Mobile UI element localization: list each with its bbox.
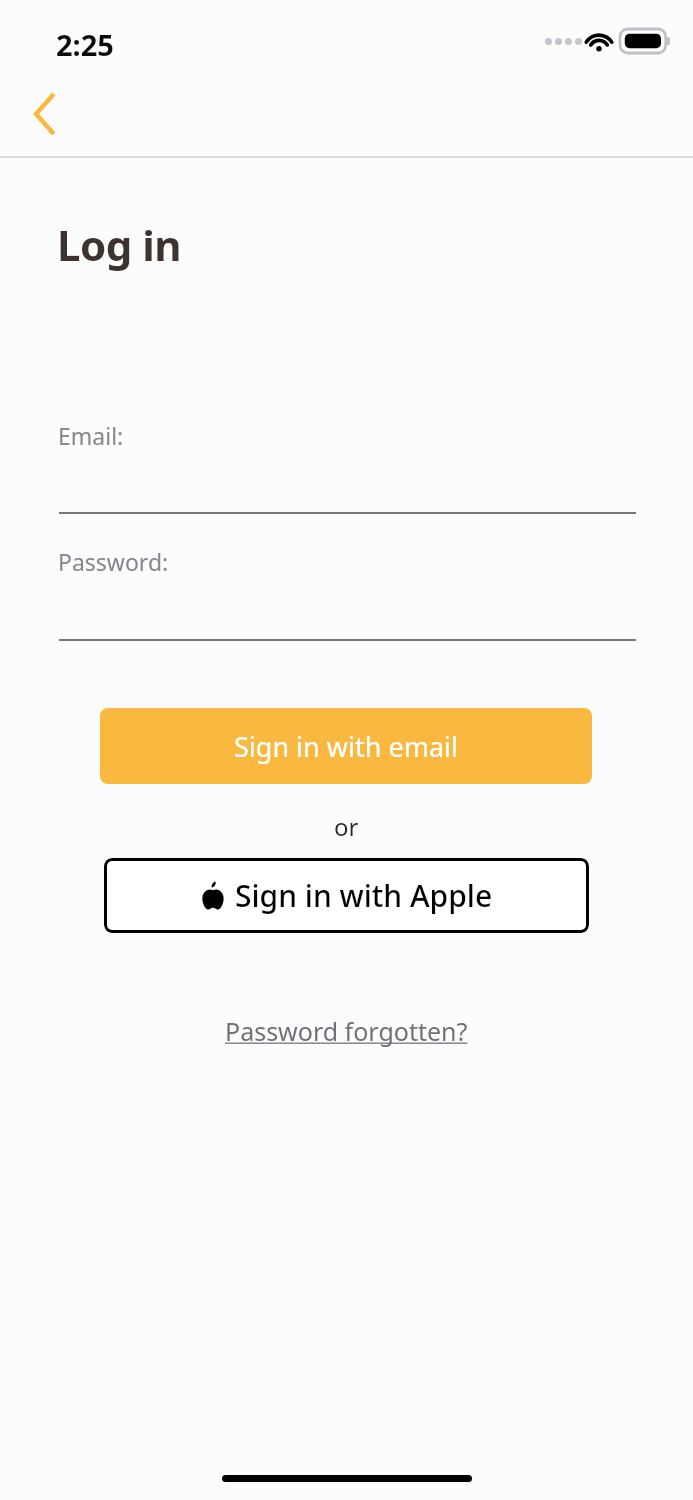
button[interactable]: Sign in with email [100, 708, 592, 784]
staticText: Password forgotten? [225, 1014, 468, 1048]
staticText: Sign in with Apple [235, 875, 493, 916]
staticText: or [334, 810, 359, 843]
staticText: Log in [57, 216, 182, 273]
button[interactable] [59, 593, 636, 641]
staticText: 2:25 [56, 25, 114, 64]
button[interactable]: Password forgotten? [225, 1014, 468, 1048]
button[interactable] [59, 466, 636, 514]
staticText: Password: [58, 546, 169, 577]
staticText: Sign in with email [234, 728, 458, 765]
button[interactable]: Back [14, 84, 78, 144]
staticText: Email: [58, 420, 124, 451]
button[interactable]: Sign in with Apple [104, 858, 589, 933]
